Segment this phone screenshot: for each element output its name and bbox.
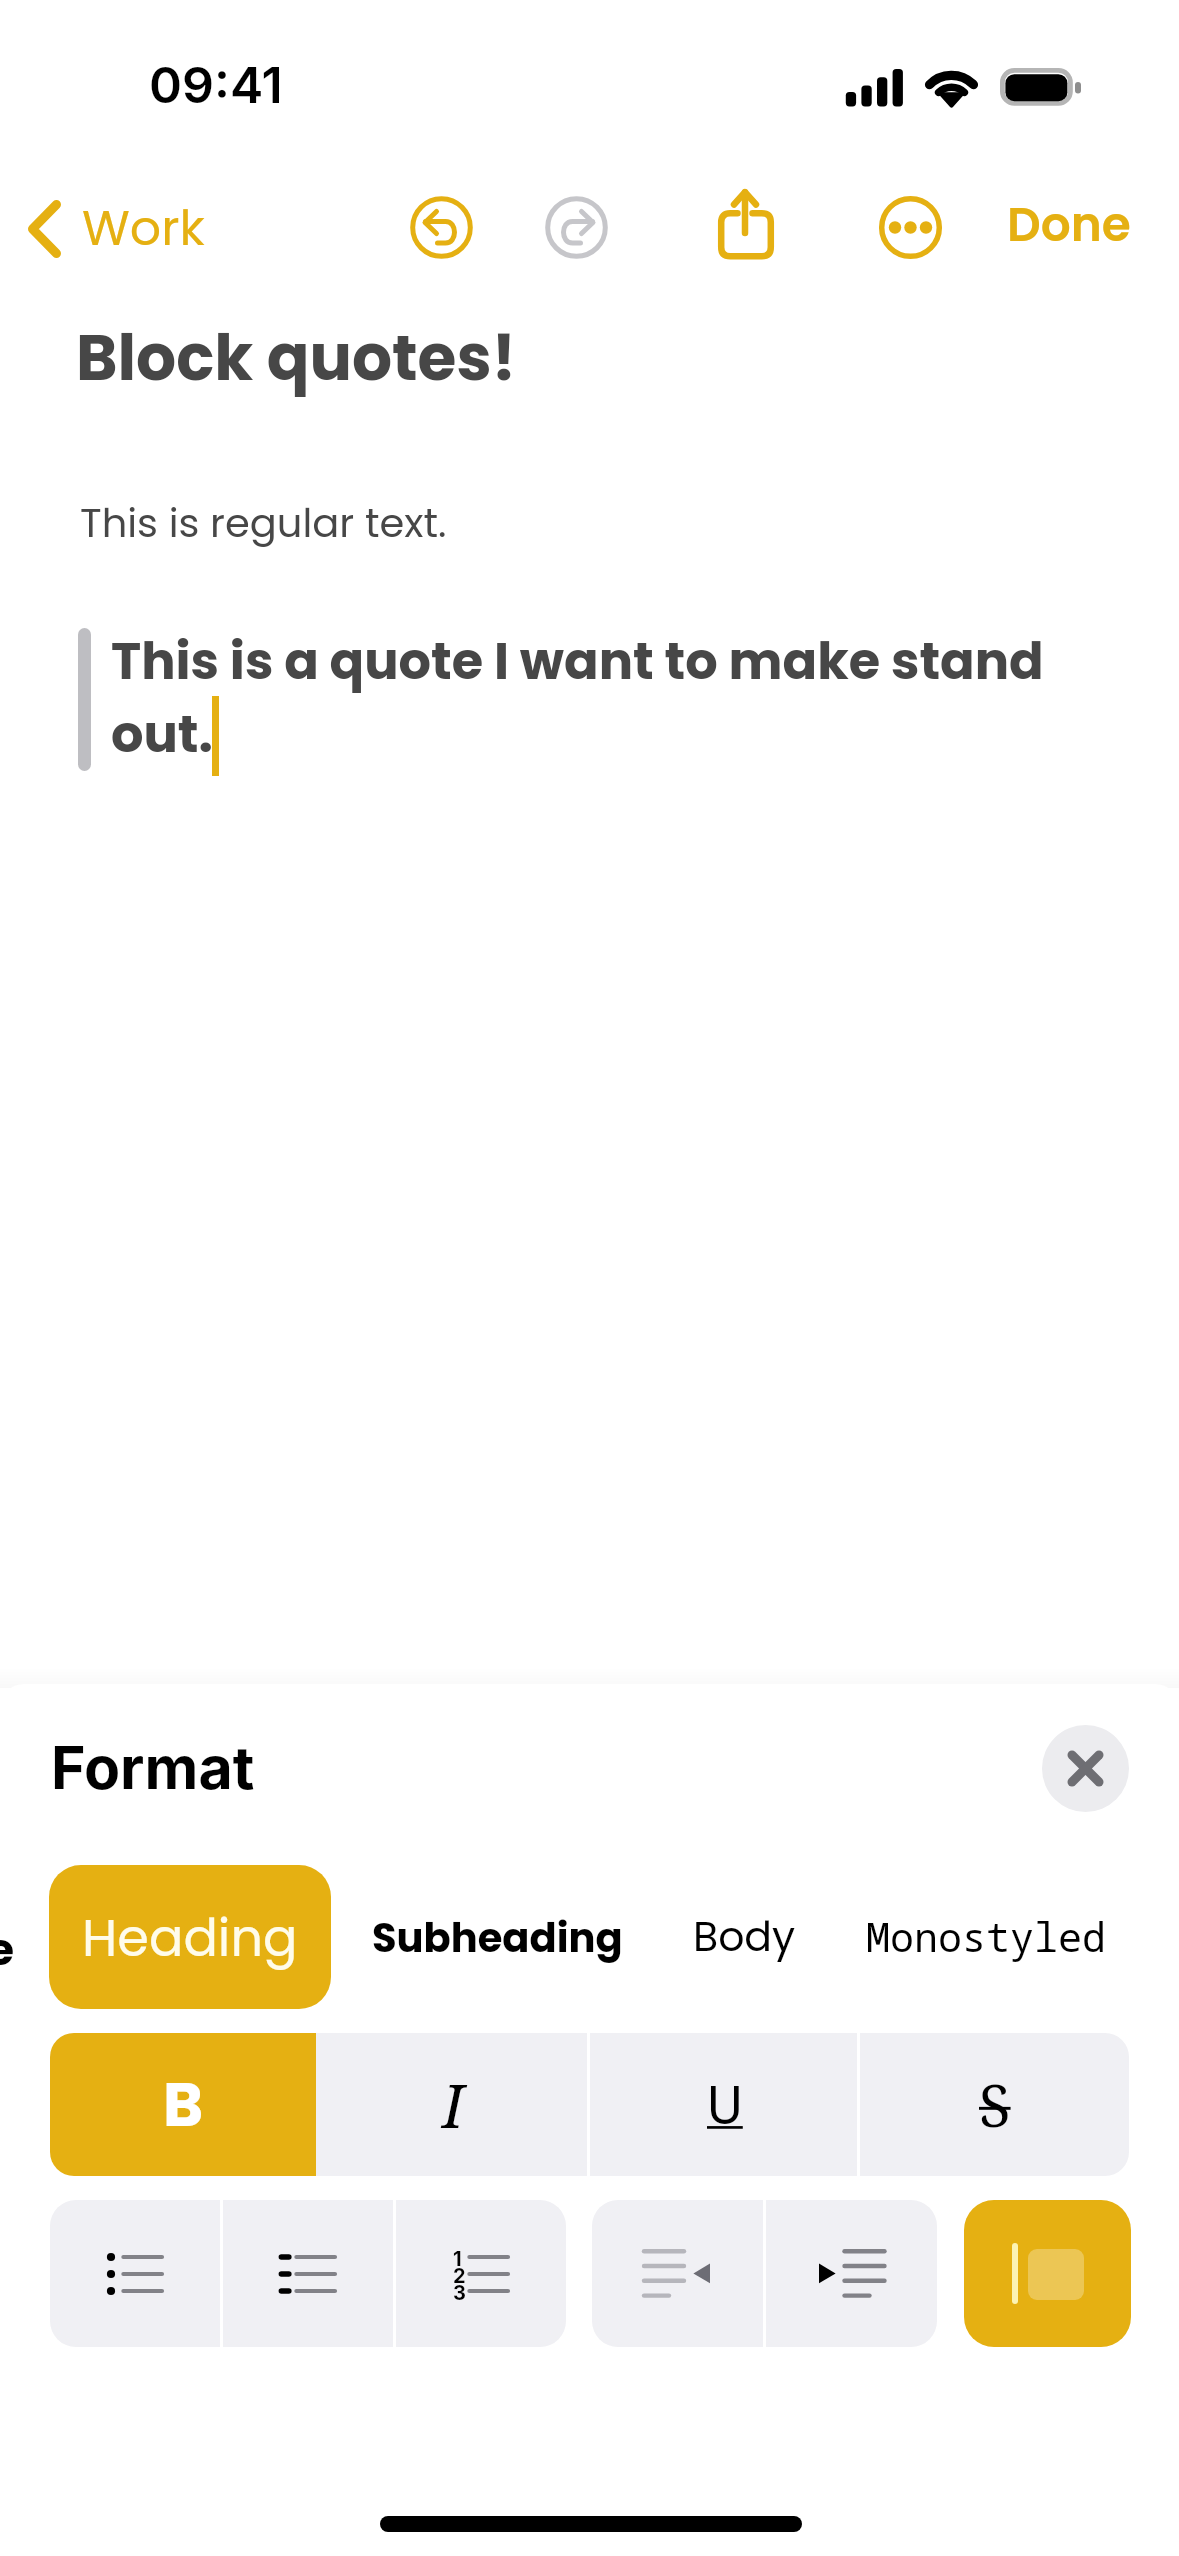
button[interactable]: U: [590, 2033, 860, 2176]
staticText: Subheading: [372, 1910, 623, 1966]
staticText: Done: [1007, 192, 1131, 258]
staticText: 09:41: [149, 55, 283, 115]
button[interactable]: S: [860, 2033, 1129, 2176]
button[interactable]: Outdent: [592, 2200, 763, 2347]
button[interactable]: Subheading: [360, 1898, 635, 1978]
staticText: U: [707, 2068, 743, 2142]
staticText: Monostyled: [866, 1909, 1106, 1963]
staticText: This is a quote I want to make stand out…: [111, 625, 1044, 770]
staticText: Body: [693, 1908, 796, 1965]
staticText: Format: [51, 1732, 255, 1803]
button[interactable]: Done: [993, 182, 1145, 268]
button[interactable]: Bulleted list: [50, 2200, 220, 2347]
staticText: 3: [453, 2281, 466, 2305]
staticText: I: [442, 2064, 465, 2146]
button[interactable]: Redo: [535, 186, 618, 269]
button[interactable]: Numbered list: [396, 2200, 566, 2347]
button[interactable]: Undo: [400, 186, 483, 269]
button[interactable]: Block quote: [964, 2200, 1131, 2347]
button[interactable]: Share: [700, 178, 792, 278]
button[interactable]: Heading: [49, 1865, 331, 2009]
staticText: Work: [82, 194, 205, 263]
button[interactable]: Dashed list: [223, 2200, 393, 2347]
button[interactable]: Work: [14, 182, 219, 275]
button[interactable]: More options: [869, 186, 952, 269]
staticText: Block quotes!: [76, 314, 517, 402]
button[interactable]: Close: [1042, 1725, 1129, 1812]
button[interactable]: B: [50, 2033, 316, 2176]
staticText: S: [979, 2065, 1011, 2144]
staticText: 2: [453, 2264, 466, 2288]
staticText: This is regular text.: [80, 495, 447, 551]
button[interactable]: Monostyled: [854, 1897, 1118, 1975]
button[interactable]: Body: [681, 1896, 808, 1977]
button[interactable]: I: [316, 2033, 590, 2176]
staticText: e: [0, 1919, 15, 1981]
staticText: B: [163, 2062, 204, 2147]
staticText: 1: [453, 2247, 462, 2271]
staticText: Heading: [82, 1902, 298, 1973]
button[interactable]: Indent: [766, 2200, 937, 2347]
